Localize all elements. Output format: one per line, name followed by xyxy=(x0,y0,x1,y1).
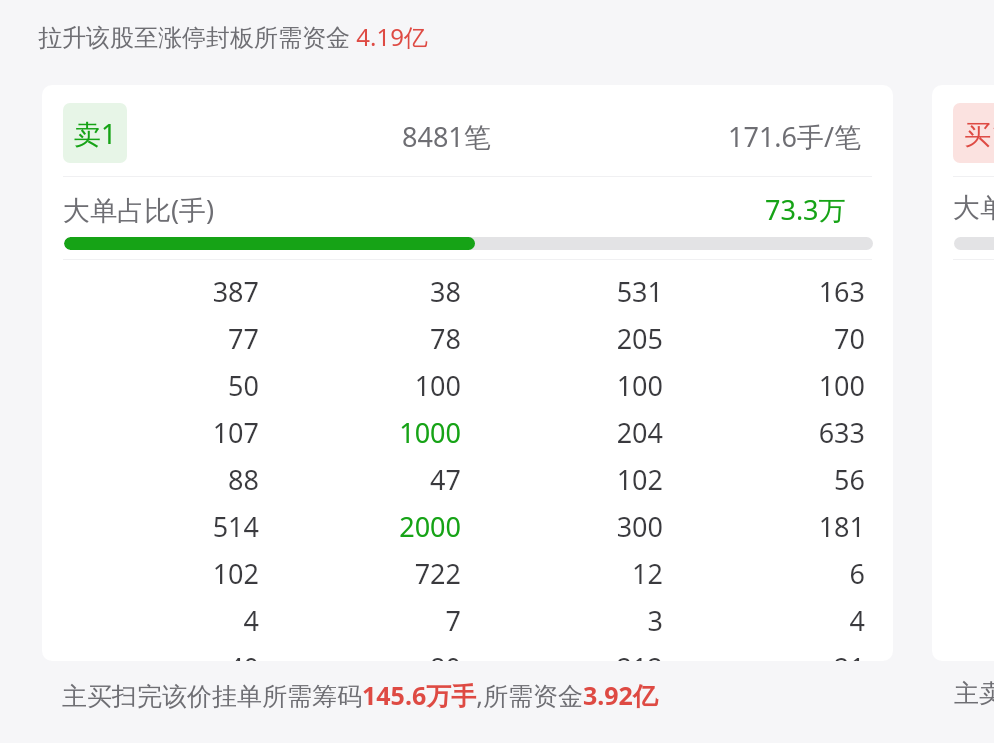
staticText: 6 xyxy=(849,555,865,592)
staticText: 拉升该股至涨停封板所需资金 4.19亿 xyxy=(38,20,428,53)
staticText: 100 xyxy=(616,367,663,404)
staticText: 531 xyxy=(616,273,663,310)
staticText: 722 xyxy=(414,555,461,592)
staticText: 56 xyxy=(834,461,865,498)
staticText: 大单 xyxy=(953,191,994,225)
staticText: 387 xyxy=(212,273,259,310)
staticText: 77 xyxy=(228,320,259,357)
staticText: 8481笔 xyxy=(402,118,491,155)
staticText: 7 xyxy=(445,602,461,639)
staticText: 2000 xyxy=(399,508,461,545)
staticText: 买1 xyxy=(964,115,994,152)
staticText: 40 xyxy=(228,649,259,661)
staticText: 50 xyxy=(228,367,259,404)
staticText: 102 xyxy=(616,461,663,498)
staticText: 633 xyxy=(818,414,865,451)
staticText: 大单占比(手) xyxy=(63,191,215,228)
staticText: 212 xyxy=(616,649,663,661)
staticText: 12 xyxy=(632,555,663,592)
button[interactable]: 买1 xyxy=(932,85,994,661)
staticText: 514 xyxy=(212,508,259,545)
staticText: 73.3万 xyxy=(765,191,846,228)
button[interactable]: 主卖 xyxy=(952,676,994,711)
button[interactable]: 买1 xyxy=(953,103,994,163)
staticText: 204 xyxy=(616,414,663,451)
staticText: 4 xyxy=(849,602,865,639)
staticText: 4 xyxy=(243,602,259,639)
staticText: 107 xyxy=(212,414,259,451)
staticText: 88 xyxy=(228,461,259,498)
staticText: 80 xyxy=(430,649,461,661)
staticText: 主买扫完该价挂单所需筹码145.6万手,所需资金3.92亿 xyxy=(62,678,658,712)
button[interactable]: 卖1 xyxy=(63,103,127,163)
staticText: 卖1 xyxy=(74,115,117,152)
staticText: 205 xyxy=(616,320,663,357)
staticText: 21 xyxy=(834,649,865,661)
button[interactable]: 拉升该股至涨停封板所需资金 4.19亿 xyxy=(36,18,430,55)
button[interactable]: 卖1 xyxy=(42,85,893,661)
staticText: 163 xyxy=(818,273,865,310)
staticText: 1000 xyxy=(399,414,461,451)
staticText: 3 xyxy=(647,602,663,639)
staticText: 300 xyxy=(616,508,663,545)
staticText: 70 xyxy=(834,320,865,357)
staticText: 38 xyxy=(430,273,461,310)
staticText: 100 xyxy=(414,367,461,404)
button[interactable]: 主买扫完该价挂单所需筹码145.6万手,所需资金3.92亿 xyxy=(60,676,660,714)
staticText: 171.6手/笔 xyxy=(728,118,862,155)
staticText: 100 xyxy=(818,367,865,404)
staticText: 102 xyxy=(212,555,259,592)
staticText: 主卖 xyxy=(954,678,994,709)
staticText: 78 xyxy=(430,320,461,357)
staticText: 181 xyxy=(818,508,865,545)
staticText: 47 xyxy=(430,461,461,498)
